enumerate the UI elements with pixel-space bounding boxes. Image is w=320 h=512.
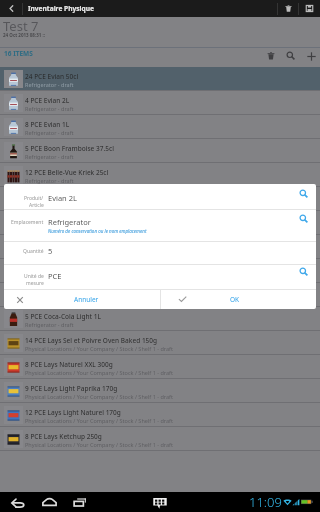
button[interactable]: Add	[301, 47, 320, 65]
staticText: 9 PCE Lays Light Paprika 170g	[25, 384, 118, 393]
button[interactable]: 6 PCE Spa Reine 50cl	[0, 283, 320, 306]
staticText: 5 PCE Coca-Cola Light 1L	[25, 312, 101, 321]
button[interactable]: 8 PCE Lays Naturel XXL 300g	[0, 355, 320, 378]
staticText: 6 PCE Spa Reine 50cl	[25, 288, 89, 297]
staticText: 4 PCE Evian 2L	[25, 96, 70, 105]
button[interactable]: Emplacement	[4, 210, 316, 241]
staticText: Refrigerator	[48, 217, 91, 227]
staticText: 6 PCE Chimay Bleue 33cl	[25, 192, 101, 201]
staticText: PCE	[48, 271, 62, 281]
staticText: 12 PCE Belle-Vue Kriek 25cl	[25, 168, 109, 177]
staticText: Refrigerator - draft	[25, 201, 74, 208]
button[interactable]: Switch keyboard	[150, 492, 170, 512]
staticText: Emplacement	[11, 219, 44, 226]
staticText: Refrigerator - draft	[25, 129, 74, 136]
staticText: Quantité	[23, 248, 44, 255]
staticText: Article	[29, 202, 44, 209]
staticText: Numéro de conservation ou le nom emplace…	[48, 228, 147, 234]
button[interactable]: Quantité	[4, 242, 316, 264]
button[interactable]: 12 PCE Belle-Vue Kriek 25cl	[0, 163, 320, 186]
staticText: Refrigerator - draft	[25, 321, 74, 328]
button[interactable]: 10 PCE Jupiler 25cl	[0, 259, 320, 282]
button[interactable]: Back	[6, 492, 28, 512]
button[interactable]: 4 PCE Orval 33cl	[0, 235, 320, 258]
button[interactable]: Save	[299, 0, 320, 17]
button[interactable]: 4 PCE Evian 2L	[0, 91, 320, 114]
staticText: Inventaire Physique	[28, 4, 94, 13]
staticText: Refrigerator - draft	[25, 273, 74, 280]
button[interactable]: Annuler	[4, 290, 160, 309]
staticText: 8 PCE Lays Naturel XXL 300g	[25, 360, 113, 369]
staticText: mesure	[26, 280, 44, 287]
staticText: 24 Oct 2013 08:31 ::	[3, 32, 46, 38]
staticText: 4 PCE Orval 33cl	[25, 240, 75, 249]
staticText: Physical Locations / Your Company / Stoc…	[25, 345, 173, 352]
button[interactable]: OK	[161, 290, 316, 309]
button[interactable]: 8 PCE Duvel 33cl	[0, 211, 320, 234]
staticText: OK	[230, 295, 240, 304]
staticText: 5 PCE Boon Framboise 37.5cl	[25, 144, 114, 153]
staticText: Physical Locations / Your Company / Stoc…	[25, 393, 173, 400]
button[interactable]: 5 PCE Coca-Cola Light 1L	[0, 307, 320, 330]
staticText: Unité de	[24, 273, 44, 280]
button[interactable]: 6 PCE Chimay Bleue 33cl	[0, 187, 320, 210]
staticText: Physical Locations / Your Company / Stoc…	[25, 369, 173, 376]
staticText: 24 PCE Evian 50cl	[25, 72, 79, 81]
staticText: Refrigerator - draft	[25, 249, 74, 256]
button[interactable]: Search	[281, 47, 301, 65]
staticText: 16 ITEMS	[4, 49, 33, 58]
staticText: Test 7	[3, 17, 39, 35]
button[interactable]: 14 PCE Lays Sel et Poivre Oven Baked 150…	[0, 331, 320, 354]
button[interactable]: 24 PCE Evian 50cl	[0, 67, 320, 90]
button[interactable]: Produit/	[4, 184, 316, 209]
staticText: 5	[48, 246, 53, 256]
staticText: 8 PCE Evian 1L	[25, 120, 70, 129]
staticText: Evian 2L	[48, 193, 77, 203]
button[interactable]: 8 PCE Lays Ketchup 250g	[0, 427, 320, 450]
staticText: 8 PCE Lays Ketchup 250g	[25, 432, 102, 441]
staticText: 8 PCE Duvel 33cl	[25, 216, 76, 225]
staticText: 10 PCE Jupiler 25cl	[25, 264, 82, 273]
button[interactable]: 12 PCE Lays Light Naturel 170g	[0, 403, 320, 426]
button[interactable]: 5 PCE Boon Framboise 37.5cl	[0, 139, 320, 162]
staticText: Produit/	[24, 195, 44, 202]
staticText: Physical Locations / Your Company / Stoc…	[25, 417, 173, 424]
staticText: 12 PCE Lays Light Naturel 170g	[25, 408, 121, 417]
staticText: Refrigerator - draft	[25, 153, 74, 160]
staticText: Annuler	[74, 295, 99, 304]
staticText: Refrigerator - draft	[25, 81, 74, 88]
staticText: Refrigerator - draft	[25, 177, 74, 184]
staticText: 14 PCE Lays Sel et Poivre Oven Baked 150…	[25, 336, 158, 345]
button[interactable]: 8 PCE Evian 1L	[0, 115, 320, 138]
button[interactable]: 9 PCE Lays Light Paprika 170g	[0, 379, 320, 402]
staticText: Physical Locations / Your Company / Stoc…	[25, 441, 173, 448]
button[interactable]: Delete	[278, 0, 298, 17]
button[interactable]: Delete items	[261, 47, 281, 65]
staticText: Refrigerator - draft	[25, 225, 74, 232]
button[interactable]: Unité de	[4, 265, 316, 289]
button[interactable]: Home	[38, 492, 60, 512]
button[interactable]: Recent apps	[69, 492, 91, 512]
button[interactable]: Back	[0, 0, 22, 17]
staticText: Refrigerator - draft	[25, 105, 74, 112]
staticText: 11:09	[249, 493, 282, 511]
